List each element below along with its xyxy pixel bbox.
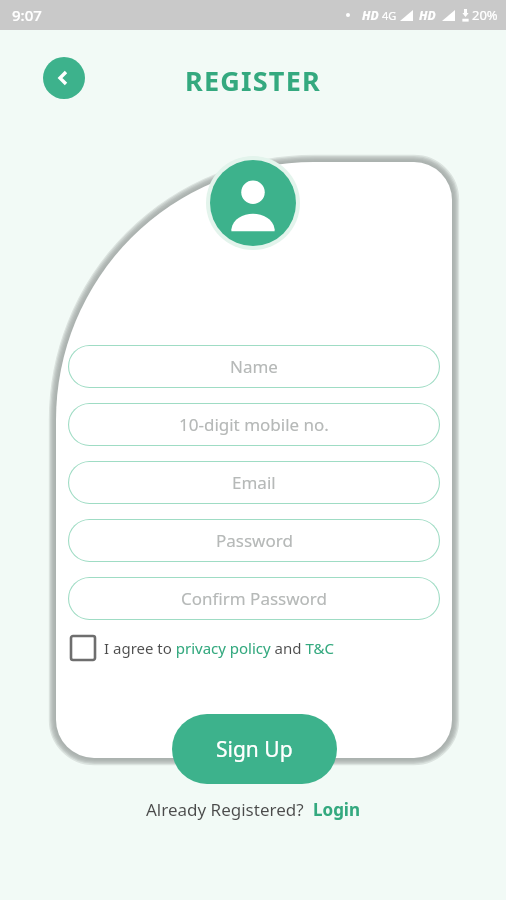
button[interactable]: Email <box>68 461 440 504</box>
staticText: 10-digit mobile no. <box>179 413 329 436</box>
staticText: 4G <box>382 8 397 23</box>
button[interactable]: Password <box>68 519 440 562</box>
staticText: Email <box>232 471 276 494</box>
staticText: Name <box>230 355 278 378</box>
staticText: Password <box>216 529 293 552</box>
button[interactable]: 10-digit mobile no. <box>68 403 440 446</box>
staticText: HD <box>362 7 379 23</box>
staticText: Login <box>313 798 361 821</box>
staticText: I agree to privacy policy and T&C <box>104 638 334 658</box>
button[interactable]: I agree to privacy policy and T&C <box>71 636 334 660</box>
staticText: Already Registered? <box>146 798 304 821</box>
staticText: HD <box>419 7 436 23</box>
button[interactable]: Back <box>43 57 85 99</box>
button[interactable]: Name <box>68 345 440 388</box>
staticText: 9:07 <box>12 5 42 25</box>
button[interactable]: Confirm Password <box>68 577 440 620</box>
staticText: Sign Up <box>216 735 293 764</box>
button[interactable]: Sign Up <box>172 714 337 784</box>
staticText: REGISTER <box>185 62 321 99</box>
button[interactable]: Login <box>313 798 361 821</box>
staticText: 20% <box>472 6 498 24</box>
staticText: Confirm Password <box>181 587 327 610</box>
